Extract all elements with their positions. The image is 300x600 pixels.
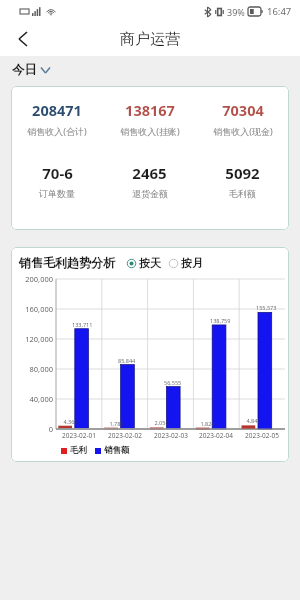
button[interactable]: 2465: [103, 163, 196, 199]
staticText: 1,824: [195, 420, 220, 427]
staticText: 2465: [132, 163, 167, 183]
button[interactable]: 5092: [196, 163, 289, 199]
staticText: 160,000: [11, 304, 53, 314]
staticText: 5092: [225, 163, 260, 183]
button[interactable]: 按月: [169, 256, 203, 270]
button[interactable]: 70-6: [11, 163, 103, 199]
staticText: 200,000: [11, 274, 53, 284]
staticText: 销售毛利趋势分析: [19, 255, 115, 270]
staticText: 138167: [125, 100, 175, 120]
staticText: 155,573: [256, 304, 277, 311]
staticText: 56,555: [164, 379, 182, 386]
staticText: 4,847: [241, 417, 266, 424]
staticText: 2023-02-05: [239, 431, 285, 440]
staticText: 120,000: [11, 334, 53, 344]
staticText: 2023-02-04: [193, 431, 239, 440]
staticText: 70304: [222, 100, 264, 120]
staticText: 订单数量: [39, 188, 75, 199]
staticText: 40,000: [11, 394, 53, 404]
staticText: 按月: [181, 256, 203, 270]
staticText: 1,788: [104, 420, 129, 427]
staticText: 销售收入(挂账): [120, 125, 180, 137]
staticText: 2023-02-01: [56, 431, 102, 440]
staticText: 2,056: [149, 419, 174, 426]
staticText: 0: [11, 424, 53, 434]
staticText: 4,365: [58, 418, 83, 425]
staticText: 70-6: [42, 163, 73, 183]
button[interactable]: 70304: [196, 100, 289, 137]
button[interactable]: Back: [8, 24, 38, 54]
staticText: 208471: [32, 100, 82, 120]
staticText: 今日: [12, 62, 37, 78]
button[interactable]: 208471: [11, 100, 103, 137]
button[interactable]: 毛利: [61, 445, 87, 456]
staticText: 138,759: [210, 317, 231, 324]
staticText: 商户运营: [120, 30, 180, 49]
staticText: 2023-02-02: [102, 431, 148, 440]
staticText: 2023-02-03: [148, 431, 194, 440]
staticText: 39%: [227, 6, 245, 18]
staticText: 毛利额: [229, 188, 256, 199]
button[interactable]: 138167: [103, 100, 196, 137]
staticText: 133,711: [72, 321, 93, 328]
button[interactable]: 销售额: [95, 445, 130, 456]
staticText: 销售额: [104, 445, 130, 456]
staticText: 85,844: [118, 357, 136, 364]
staticText: 80,000: [11, 364, 53, 374]
staticText: 按天: [139, 256, 161, 270]
staticText: 退货金额: [132, 188, 168, 199]
button[interactable]: 按天: [127, 256, 161, 270]
button[interactable]: 今日: [12, 62, 50, 78]
staticText: 毛利: [70, 445, 87, 456]
staticText: 销售收入(现金): [213, 125, 273, 137]
staticText: 销售收入(合计): [27, 125, 87, 137]
staticText: 16:47: [267, 5, 292, 18]
